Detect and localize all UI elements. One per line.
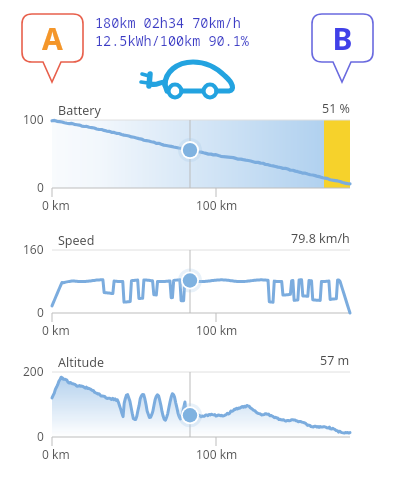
other: Trip charts xyxy=(0,0,395,479)
button[interactable]: Trip charts xyxy=(0,0,395,479)
